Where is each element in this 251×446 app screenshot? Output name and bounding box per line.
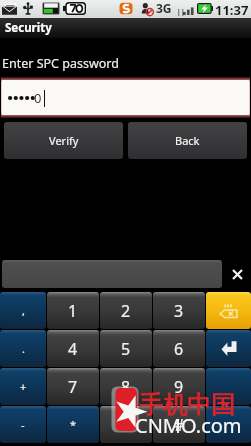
button[interactable]: Close keyboard — [224, 260, 251, 288]
button[interactable]: 7 — [47, 368, 99, 405]
button[interactable]: Symbols — [206, 406, 251, 443]
button[interactable]: 3 — [153, 292, 205, 329]
button[interactable]: 5 — [100, 330, 152, 367]
staticText: # — [174, 414, 185, 436]
staticText: 手机中国 — [139, 390, 235, 420]
staticText: 0 — [121, 414, 131, 436]
button[interactable]: + — [0, 368, 46, 405]
button[interactable]: # — [153, 406, 205, 443]
button[interactable]: Enter — [206, 330, 251, 367]
staticText: 7 — [68, 376, 78, 398]
staticText: 4 — [68, 338, 78, 360]
staticText: CNMO.com — [135, 412, 242, 439]
staticText: 11:37 — [215, 1, 249, 19]
staticText: Enter SPC password — [2, 55, 119, 72]
button[interactable]: 0 — [100, 406, 152, 443]
staticText: 2 — [121, 300, 131, 322]
staticText: , — [22, 303, 25, 318]
staticText: 0 — [34, 89, 42, 107]
staticText: 3G — [156, 0, 172, 16]
button[interactable]: Back — [128, 122, 247, 159]
button[interactable]: 2 — [100, 292, 152, 329]
staticText: . — [22, 341, 25, 356]
staticText: 1 — [68, 300, 78, 322]
button[interactable]: 4 — [47, 330, 99, 367]
staticText: 5 — [121, 338, 131, 360]
staticText: Verify — [49, 133, 79, 148]
staticText: * — [70, 417, 77, 432]
button[interactable]: 0 — [2, 80, 249, 115]
staticText: 3 — [174, 300, 184, 322]
button[interactable]: Verify — [4, 122, 123, 159]
staticText: 9 — [174, 376, 184, 398]
staticText: 8 — [121, 376, 131, 398]
button[interactable] — [2, 260, 222, 288]
button[interactable]: 1 — [47, 292, 99, 329]
staticText: Back — [175, 133, 200, 148]
button[interactable]: Delete — [206, 292, 251, 329]
staticText: Security — [5, 20, 52, 36]
button[interactable]: 9 — [153, 368, 205, 405]
button[interactable]: * — [47, 406, 99, 443]
button[interactable]: 6 — [153, 330, 205, 367]
button[interactable]: . — [0, 330, 46, 367]
staticText: + — [20, 379, 27, 394]
button[interactable]: - — [0, 406, 46, 443]
button[interactable]: Space — [206, 368, 251, 405]
staticText: - — [21, 417, 25, 432]
staticText: 6 — [174, 338, 184, 360]
button[interactable]: , — [0, 292, 46, 329]
button[interactable]: 8 — [100, 368, 152, 405]
